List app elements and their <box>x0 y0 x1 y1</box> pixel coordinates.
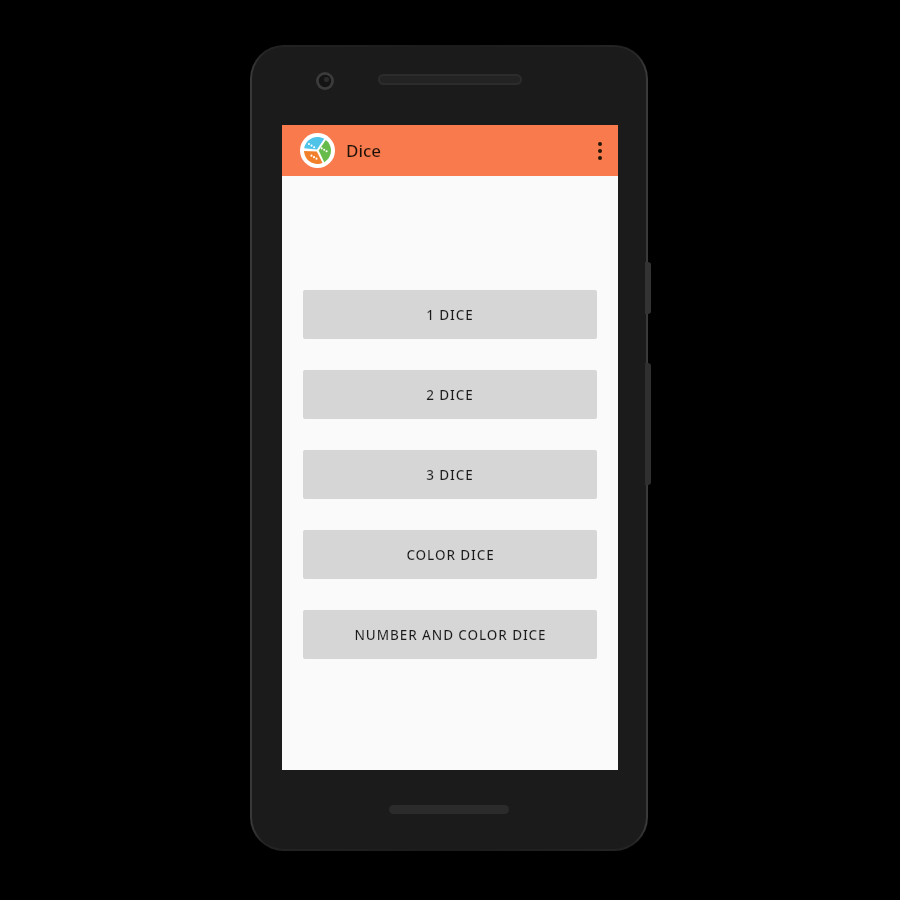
staticText: 3 DICE <box>426 466 474 484</box>
button[interactable]: 2 DICE <box>303 370 597 419</box>
button[interactable]: 1 DICE <box>303 290 597 339</box>
staticText: COLOR DICE <box>406 546 495 564</box>
staticText: NUMBER AND COLOR DICE <box>354 626 547 644</box>
button[interactable]: NUMBER AND COLOR DICE <box>303 610 597 659</box>
button[interactable]: COLOR DICE <box>303 530 597 579</box>
staticText: 2 DICE <box>426 386 474 404</box>
staticText: 1 DICE <box>426 306 474 324</box>
button[interactable]: More options <box>582 125 618 176</box>
button[interactable]: 3 DICE <box>303 450 597 499</box>
staticText: Dice <box>346 139 382 162</box>
